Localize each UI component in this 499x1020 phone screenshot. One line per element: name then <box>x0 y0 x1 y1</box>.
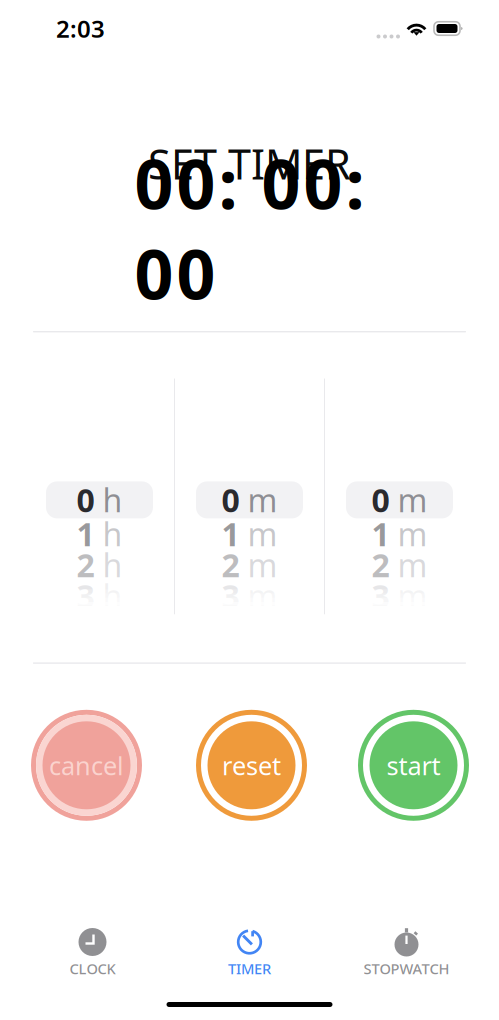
button[interactable]: 1 <box>196 518 303 549</box>
staticText: h <box>102 513 122 555</box>
button[interactable]: cancel <box>33 712 140 819</box>
staticText: cancel <box>49 748 124 782</box>
staticText: 2:03 <box>56 13 105 44</box>
button[interactable]: start <box>360 712 467 819</box>
staticText: reset <box>222 748 281 782</box>
staticText: m <box>247 479 277 521</box>
button[interactable]: 0 <box>46 481 153 518</box>
button[interactable]: 2 <box>346 549 453 580</box>
button[interactable]: 0 <box>196 481 303 518</box>
staticText: SET TIMER <box>148 136 351 191</box>
staticText: 1 <box>76 513 94 555</box>
staticText: 0 <box>371 479 389 521</box>
staticText: 2 <box>76 544 94 586</box>
staticText: m <box>247 544 277 586</box>
staticText: 00: 00: 00 <box>134 138 364 318</box>
staticText: m <box>247 513 277 555</box>
button[interactable]: 3 <box>46 580 153 611</box>
button[interactable]: TIMER <box>194 922 304 978</box>
staticText: h <box>102 544 122 586</box>
button[interactable]: 3 <box>346 580 453 611</box>
button[interactable]: 1 <box>346 518 453 549</box>
button[interactable]: 3 <box>196 580 303 611</box>
button[interactable]: STOPWATCH <box>351 922 461 978</box>
staticText: 1 <box>221 513 239 555</box>
button[interactable]: 0 <box>346 481 453 518</box>
staticText: start <box>386 748 440 782</box>
button[interactable]: 2 <box>196 549 303 580</box>
button[interactable]: reset <box>198 712 305 819</box>
staticText: m <box>247 575 277 617</box>
staticText: h <box>102 575 122 617</box>
staticText: 3 <box>221 575 239 617</box>
staticText: 3 <box>76 575 94 617</box>
staticText: STOPWATCH <box>363 959 449 978</box>
staticText: 3 <box>371 575 389 617</box>
staticText: CLOCK <box>69 959 115 978</box>
staticText: h <box>102 479 122 521</box>
button[interactable]: CLOCK <box>37 922 147 978</box>
staticText: 2 <box>221 544 239 586</box>
button[interactable]: 1 <box>46 518 153 549</box>
staticText: 0 <box>76 479 94 521</box>
staticText: m <box>397 513 427 555</box>
staticText: TIMER <box>228 959 271 978</box>
staticText: 1 <box>371 513 389 555</box>
staticText: m <box>397 479 427 521</box>
staticText: m <box>397 544 427 586</box>
staticText: m <box>397 575 427 617</box>
staticText: 2 <box>371 544 389 586</box>
staticText: 0 <box>221 479 239 521</box>
button[interactable]: 2 <box>46 549 153 580</box>
